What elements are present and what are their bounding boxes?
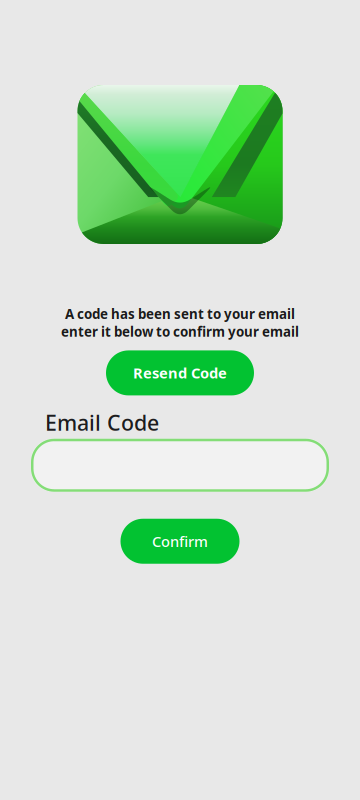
staticText: A code has been sent to your email [65,305,295,323]
staticText: Confirm [152,531,208,551]
staticText: Resend Code [133,363,227,383]
staticText: enter it below to confirm your email [61,323,299,340]
button[interactable]: Confirm [120,519,239,564]
button[interactable]: Resend Code [106,350,254,395]
staticText: Email Code [45,408,159,437]
